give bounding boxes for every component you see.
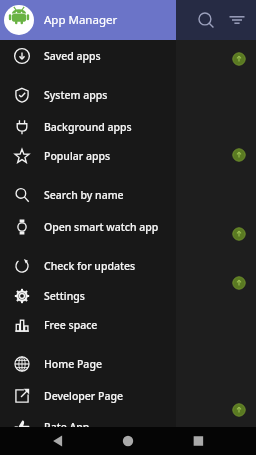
staticText: Saved apps [44, 49, 101, 63]
staticText: Rate App [44, 420, 90, 434]
button[interactable]: Saved apps [0, 40, 176, 72]
button[interactable]: Open smart watch app [0, 211, 176, 243]
button[interactable]: System apps [0, 79, 176, 111]
staticText: App Manager [44, 12, 118, 28]
staticText: Search by name [44, 188, 124, 202]
button[interactable]: Check for updates [0, 250, 176, 282]
button[interactable]: Rate App [0, 411, 176, 443]
staticText: Background apps [44, 120, 132, 134]
staticText: Open smart watch app [44, 220, 159, 234]
button[interactable]: Settings [0, 280, 176, 312]
button[interactable]: Search [195, 9, 217, 31]
staticText: System apps [44, 88, 108, 102]
button[interactable] [0, 427, 256, 455]
button[interactable]: Filter [226, 9, 248, 31]
staticText: Popular apps [44, 149, 111, 163]
button[interactable]: App Manager [0, 0, 176, 40]
staticText: Settings [44, 289, 85, 303]
button[interactable]: Search by name [0, 179, 176, 211]
button[interactable]: Background apps [0, 111, 176, 143]
button[interactable]: Developer Page [0, 380, 176, 412]
button[interactable]: Popular apps [0, 140, 176, 172]
staticText: Free space [44, 318, 98, 332]
staticText: Developer Page [44, 389, 123, 403]
staticText: Home Page [44, 357, 102, 371]
button[interactable]: Free space [0, 309, 176, 341]
button[interactable]: Home Page [0, 348, 176, 380]
staticText: Check for updates [44, 259, 136, 273]
